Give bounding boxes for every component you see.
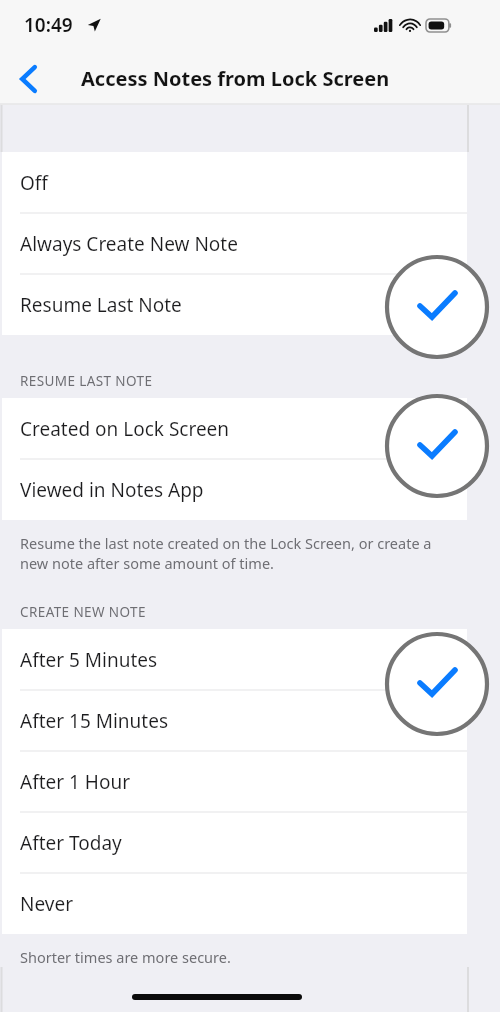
staticText: Never — [20, 891, 73, 917]
button[interactable]: Viewed in Notes App — [2, 459, 467, 520]
staticText: Resume the last note created on the Lock… — [20, 533, 440, 574]
button[interactable]: Never — [2, 873, 467, 934]
staticText: Resume Last Note — [20, 292, 182, 318]
staticText: Off — [20, 170, 48, 196]
staticText: RESUME LAST NOTE — [20, 372, 153, 390]
staticText: Shorter times are more secure. — [20, 947, 231, 967]
staticText: After 15 Minutes — [20, 708, 169, 734]
button[interactable]: Resume Last Note — [2, 274, 467, 335]
button[interactable]: Always Create New Note — [2, 213, 467, 274]
button[interactable]: Off — [2, 152, 467, 213]
staticText: Always Create New Note — [20, 231, 238, 257]
button[interactable]: Back — [6, 57, 50, 101]
staticText: Created on Lock Screen — [20, 416, 230, 442]
staticText: CREATE NEW NOTE — [20, 603, 146, 621]
staticText: After 1 Hour — [20, 769, 131, 795]
staticText: After 5 Minutes — [20, 647, 158, 673]
button[interactable]: After Today — [2, 812, 467, 873]
staticText: After Today — [20, 830, 122, 856]
button[interactable]: Created on Lock Screen — [2, 398, 467, 459]
staticText: Viewed in Notes App — [20, 477, 204, 503]
staticText: Access Notes from Lock Screen — [81, 65, 390, 92]
staticText: 10:49 — [24, 12, 73, 38]
button[interactable]: After 15 Minutes — [2, 690, 467, 751]
button[interactable]: After 1 Hour — [2, 751, 467, 812]
button[interactable]: After 5 Minutes — [2, 629, 467, 690]
